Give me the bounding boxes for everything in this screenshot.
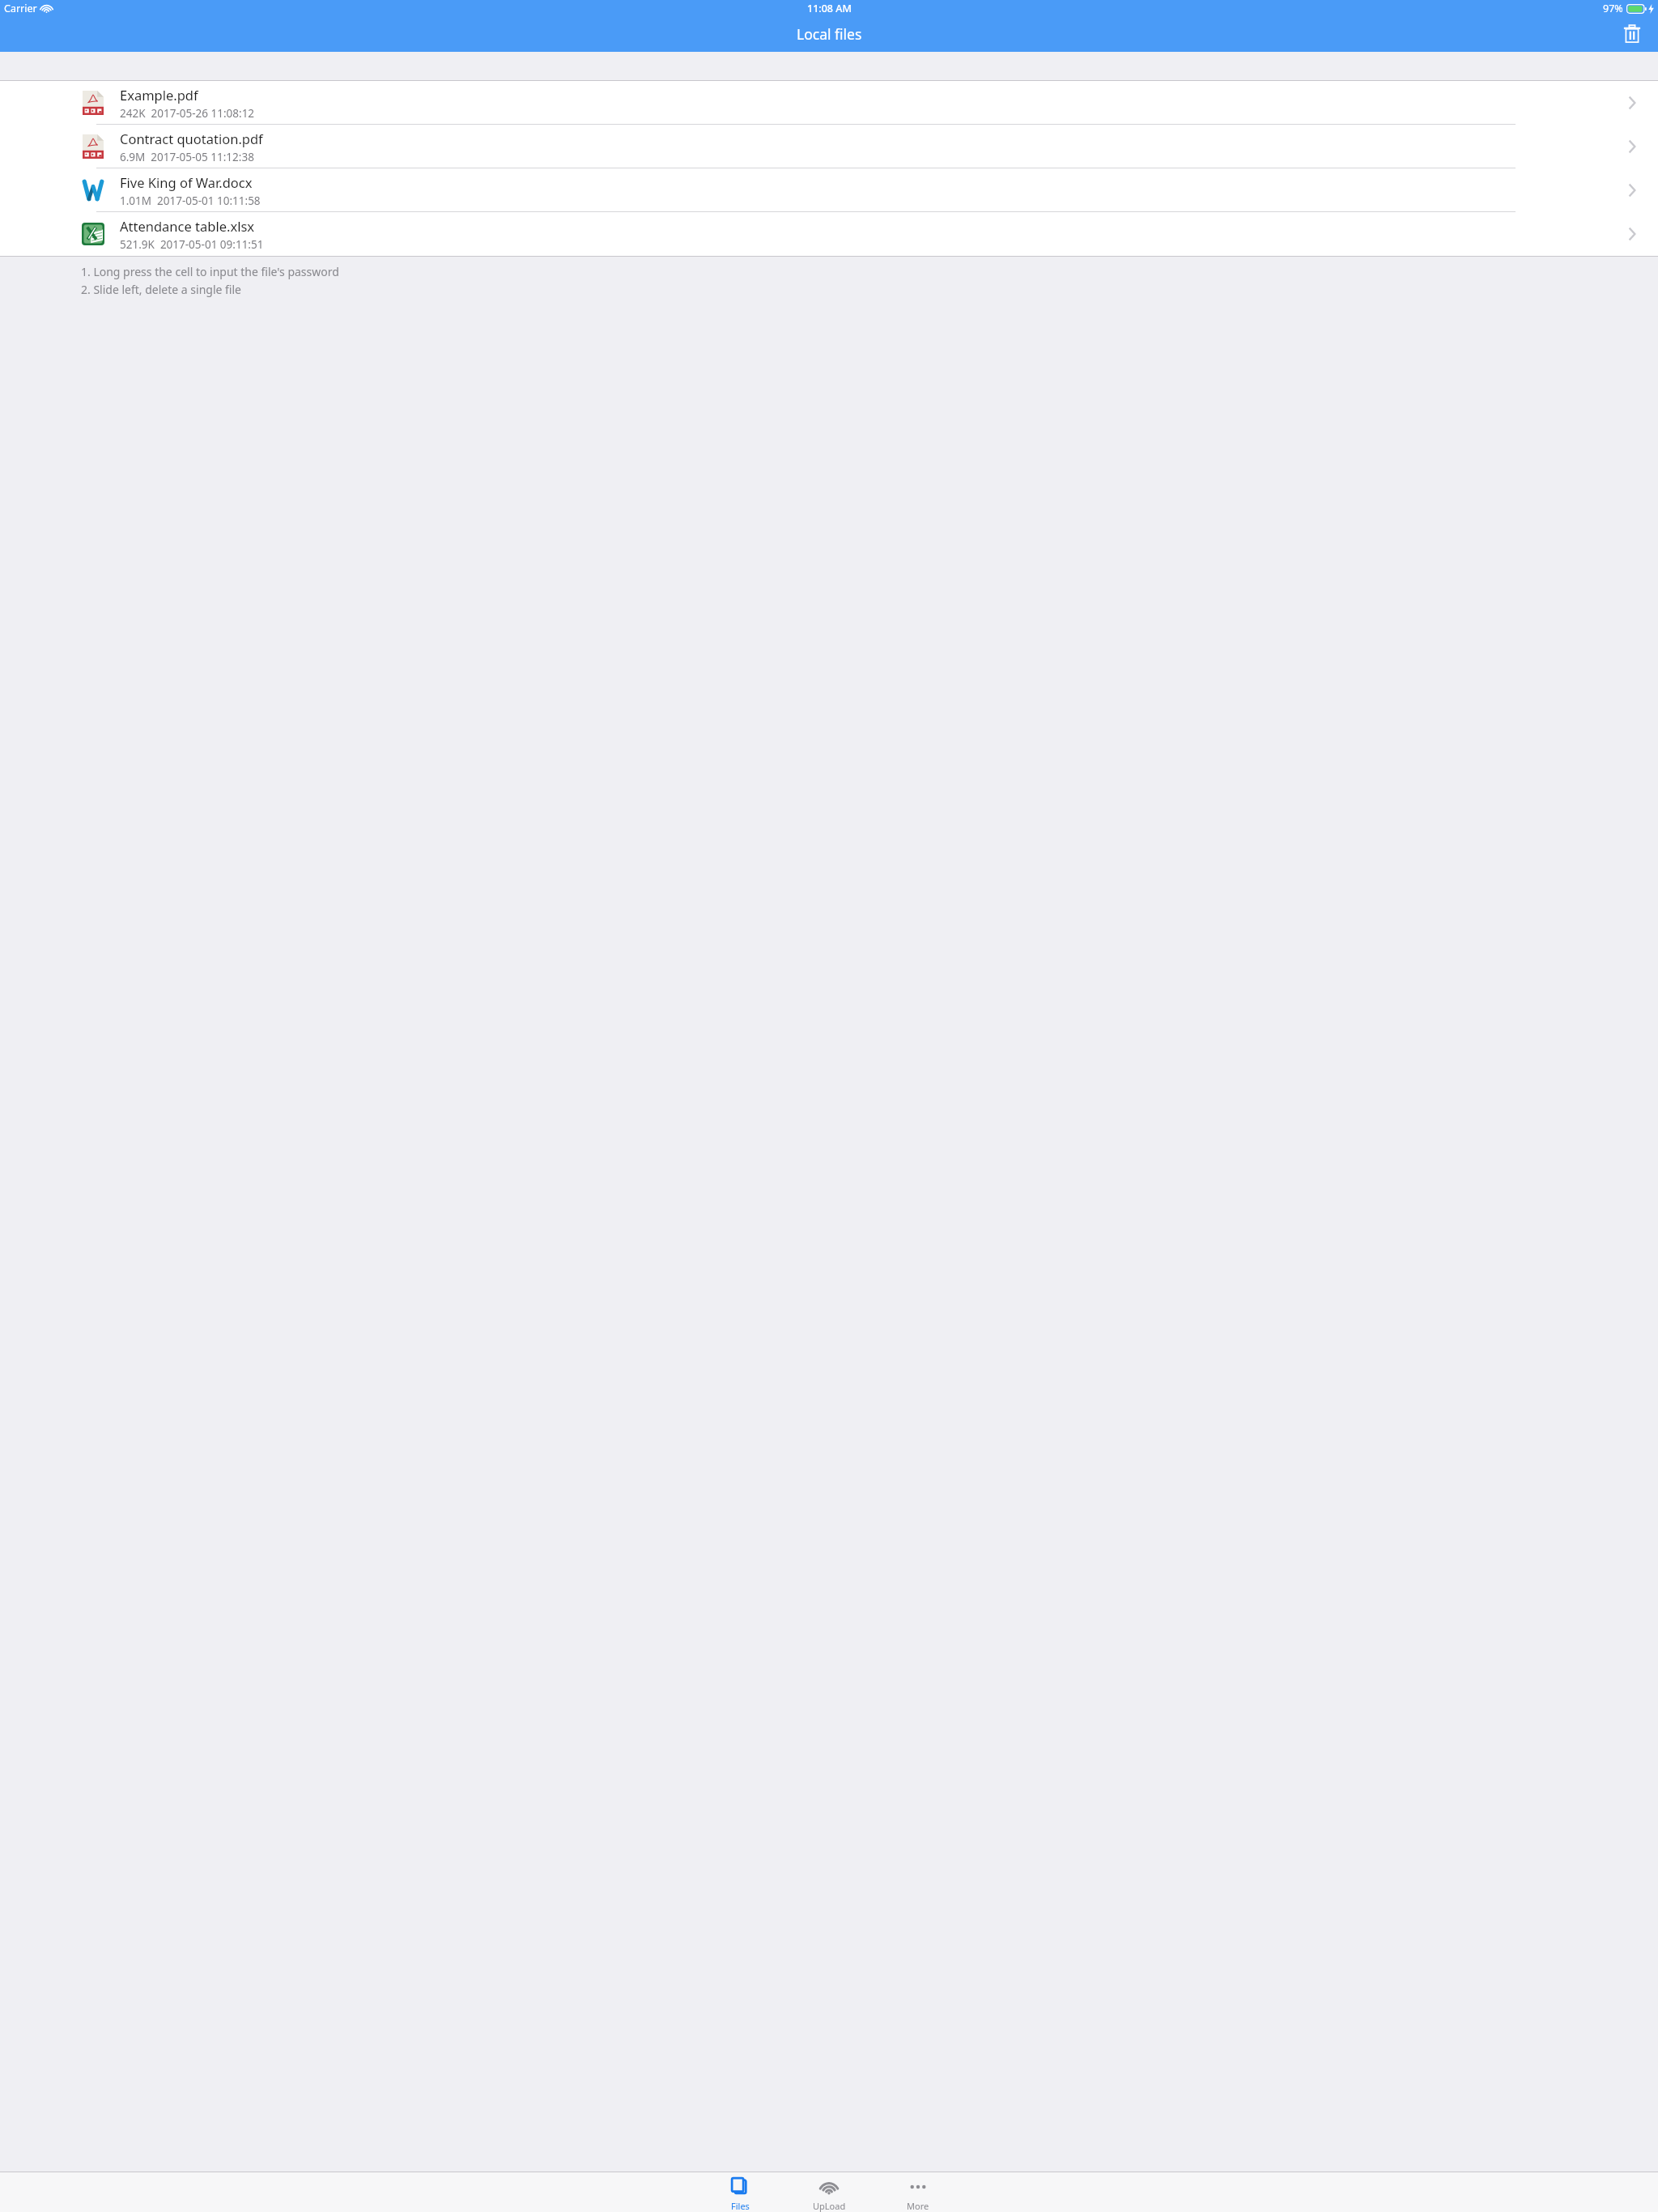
- staticText: 97%: [1603, 2, 1623, 15]
- staticText: Example.pdf: [120, 86, 198, 104]
- staticText: UpLoad: [813, 2200, 846, 2212]
- staticText: Local files: [797, 24, 862, 44]
- staticText: 6.9M 2017-05-05 11:12:38: [120, 150, 254, 164]
- button[interactable]: UpLoad: [784, 2172, 874, 2212]
- button[interactable]: More: [874, 2172, 963, 2212]
- staticText: 1. Long press the cell to input the file…: [81, 264, 339, 279]
- staticText: More: [907, 2200, 929, 2212]
- staticText: Attendance table.xlsx: [120, 217, 255, 235]
- staticText: 521.9K 2017-05-01 09:11:51: [120, 237, 264, 252]
- staticText: Contract quotation.pdf: [120, 130, 263, 147]
- staticText: Files: [731, 2200, 750, 2212]
- staticText: Carrier: [4, 2, 37, 15]
- staticText: 1.01M 2017-05-01 10:11:58: [120, 194, 261, 208]
- button[interactable]: Contract quotation.pdf: [0, 125, 1658, 168]
- button[interactable]: Attendance table.xlsx: [0, 212, 1658, 256]
- staticText: Five King of War.docx: [120, 173, 253, 191]
- button[interactable]: Five King of War.docx: [0, 168, 1658, 212]
- button[interactable]: Example.pdf: [0, 81, 1658, 125]
- staticText: 2. Slide left, delete a single file: [81, 282, 241, 297]
- staticText: 242K 2017-05-26 11:08:12: [120, 106, 255, 121]
- staticText: 11:08 AM: [807, 2, 852, 15]
- button[interactable]: Files: [695, 2172, 784, 2212]
- button[interactable]: Delete: [1616, 18, 1648, 50]
